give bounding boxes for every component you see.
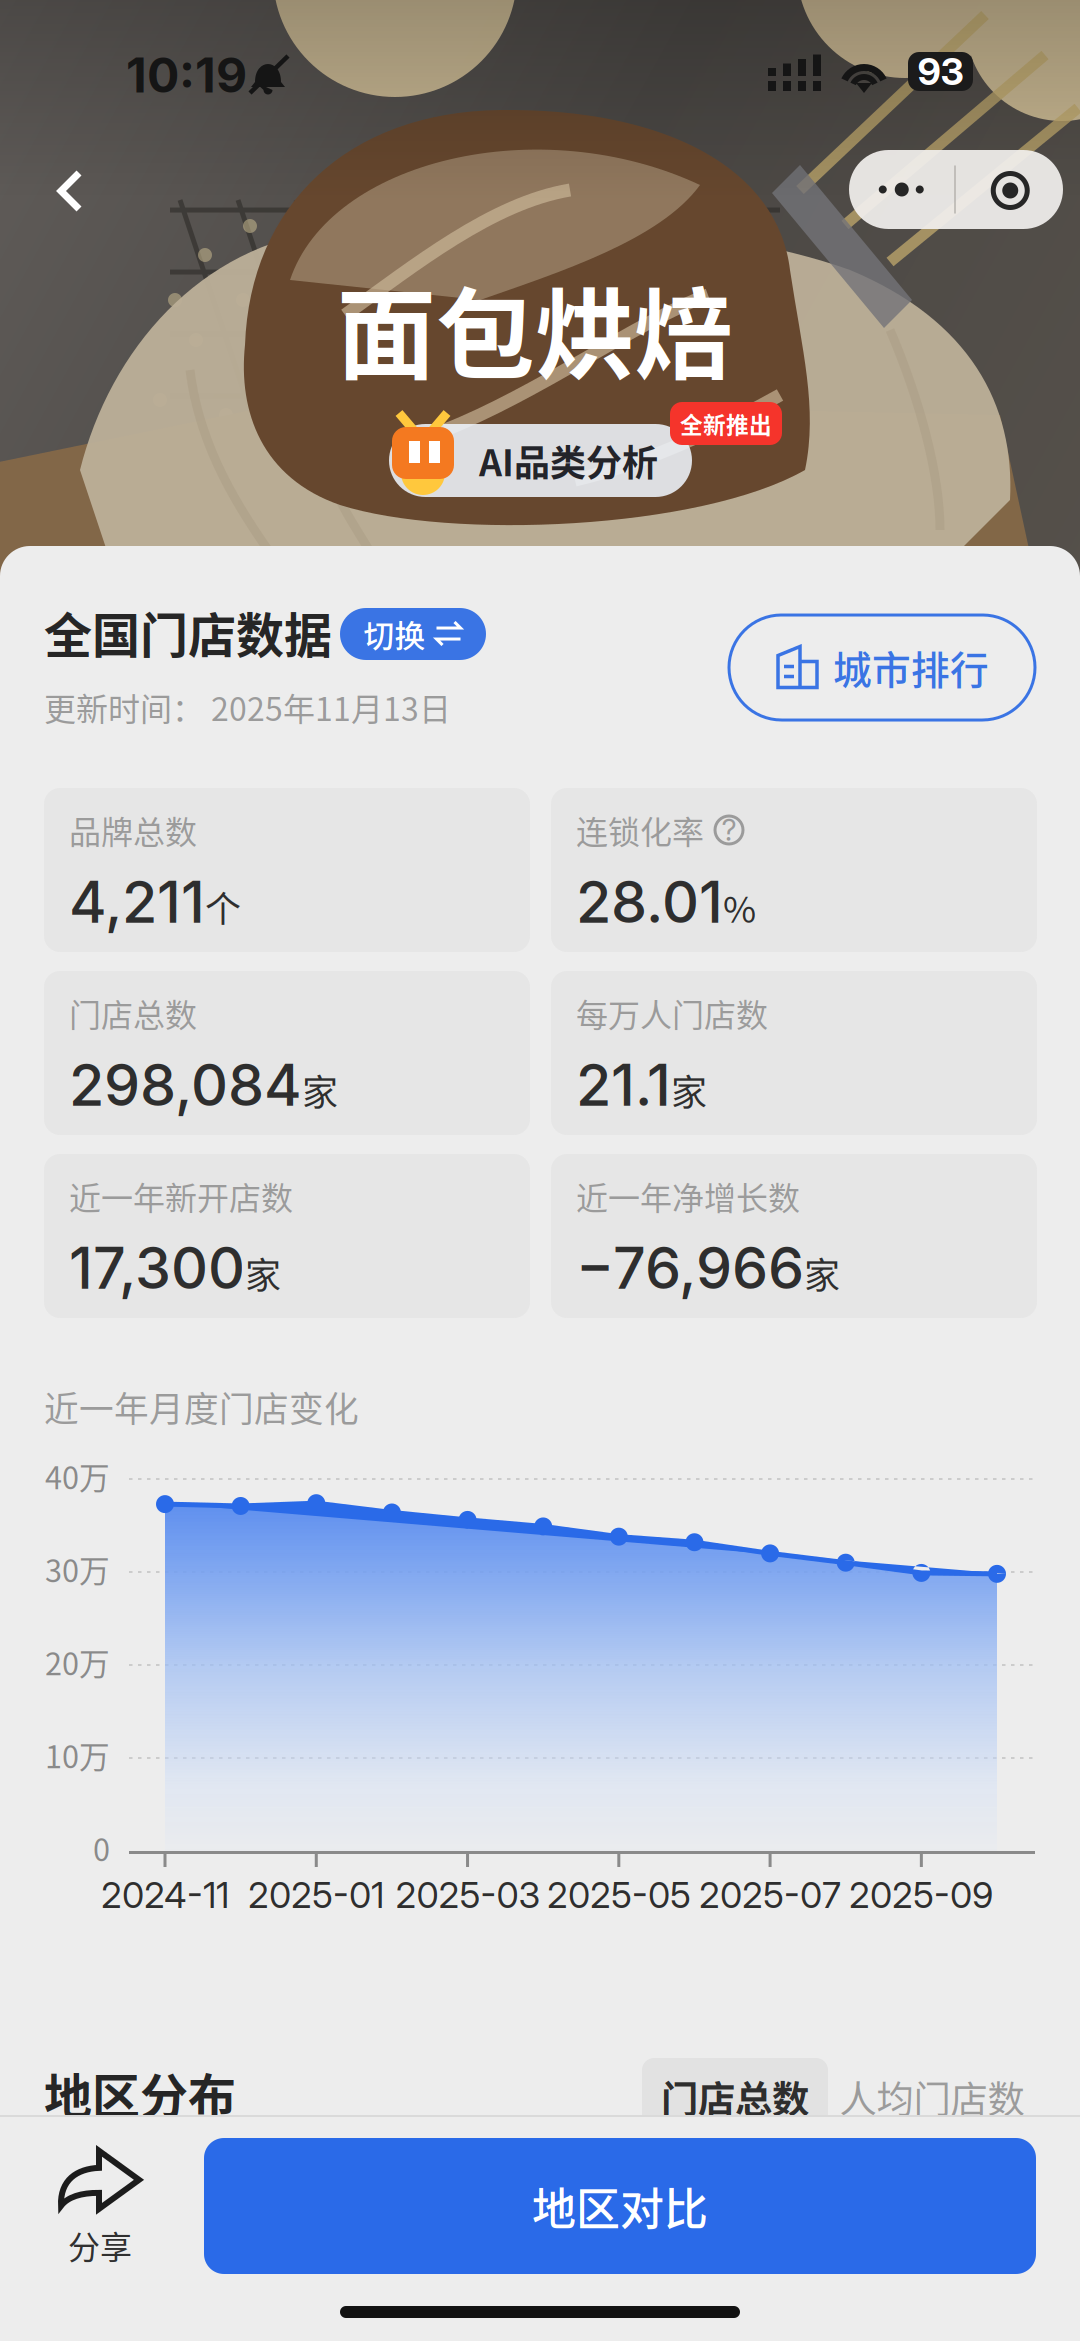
staticText: 面包烘焙: [337, 257, 733, 399]
staticText: −76,966: [576, 1233, 804, 1303]
staticText: 2025-07: [699, 1873, 841, 1917]
staticText: 更新时间： 2025年11月13日: [44, 684, 451, 730]
button[interactable]: 切换: [340, 608, 486, 660]
staticText: 个: [205, 881, 241, 933]
staticText: 10万: [45, 1733, 110, 1777]
staticText: 分享: [68, 2222, 132, 2268]
staticText: 品牌总数: [69, 807, 197, 853]
staticText: 家: [671, 1064, 707, 1116]
staticText: 门店总数: [69, 990, 197, 1036]
staticText: 4,211: [69, 867, 205, 937]
staticText: 0: [93, 1826, 110, 1870]
staticText: 全国门店数据: [44, 597, 332, 667]
button[interactable]: Close mini program: [956, 150, 1063, 229]
staticText: ?: [721, 812, 736, 848]
staticText: 2024-11: [101, 1873, 229, 1917]
staticText: AI品类分析: [479, 434, 658, 486]
staticText: %: [723, 881, 756, 933]
button[interactable]: 门店总数: [642, 2058, 828, 2136]
staticText: 20万: [45, 1640, 110, 1684]
staticText: 家: [302, 1064, 338, 1116]
staticText: 家: [804, 1247, 840, 1299]
staticText: 门店总数: [661, 2070, 809, 2124]
staticText: 93: [917, 49, 963, 94]
staticText: 298,084: [69, 1050, 302, 1120]
staticText: 地区分布: [44, 2058, 236, 2128]
staticText: 地区对比: [532, 2174, 708, 2238]
staticText: 全新推出: [680, 407, 772, 440]
staticText: 城市排行: [833, 639, 989, 695]
staticText: 30万: [45, 1547, 110, 1591]
button[interactable]: 分享: [22, 2140, 178, 2276]
staticText: 2025-03: [395, 1873, 540, 1917]
button[interactable]: 地区对比: [204, 2138, 1036, 2274]
button[interactable]: 人均门店数: [828, 2058, 1036, 2136]
button[interactable]: Back: [22, 147, 118, 235]
staticText: 40万: [45, 1454, 110, 1498]
staticText: 2025-09: [849, 1873, 993, 1917]
staticText: 连锁化率: [576, 807, 704, 853]
staticText: 2025-05: [547, 1873, 691, 1917]
staticText: 人均门店数: [839, 2070, 1024, 2124]
staticText: 2025-01: [248, 1873, 384, 1917]
button[interactable]: More options: [849, 150, 954, 229]
staticText: 近一年新开店数: [69, 1173, 293, 1219]
staticText: 每万人门店数: [576, 990, 768, 1036]
staticText: 17,300: [69, 1233, 245, 1303]
staticText: 近一年月度门店变化: [44, 1382, 359, 1432]
staticText: 切换: [363, 612, 425, 656]
staticText: 28.01: [576, 867, 723, 937]
staticText: 10:19: [126, 46, 247, 104]
staticText: 21.1: [576, 1050, 671, 1120]
staticText: 家: [245, 1247, 281, 1299]
staticText: 近一年净增长数: [576, 1173, 800, 1219]
button[interactable]: 城市排行: [729, 615, 1035, 720]
